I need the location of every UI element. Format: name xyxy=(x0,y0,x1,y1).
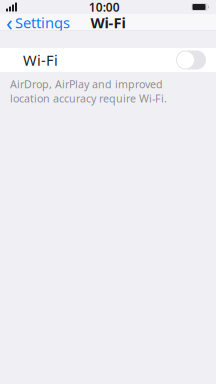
staticText: 10:00 xyxy=(89,0,120,15)
staticText: ‹ xyxy=(6,8,13,37)
staticText: Settings xyxy=(15,13,70,32)
button[interactable]: ‹ xyxy=(0,6,70,39)
staticText: Wi-Fi xyxy=(90,13,125,32)
staticText: Wi-Fi xyxy=(23,50,58,70)
button[interactable]: Wi-Fi xyxy=(0,48,216,72)
staticText: AirDrop, AirPlay and improved location a… xyxy=(10,77,167,105)
